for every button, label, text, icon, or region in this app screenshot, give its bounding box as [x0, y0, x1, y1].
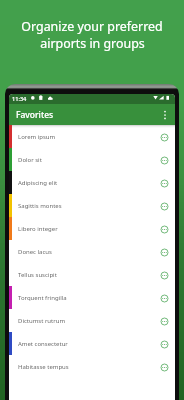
button[interactable]: Options for Habitasse tempus: [155, 358, 173, 376]
button[interactable]: Sagittis montes: [9, 194, 175, 217]
staticText: airports in groups: [40, 35, 145, 52]
button[interactable]: Amet consectetur: [9, 332, 175, 355]
staticText: Organize your preferred: [21, 18, 163, 35]
staticText: Dictumst rutrum: [18, 317, 66, 325]
staticText: Libero integer: [18, 225, 58, 233]
button[interactable]: Options for Dictumst rutrum: [155, 312, 173, 330]
button[interactable]: More options: [156, 106, 174, 124]
staticText: Tellus suscipit: [18, 271, 57, 279]
button[interactable]: Lorem ipsum: [9, 125, 175, 148]
staticText: Torquent fringilla: [18, 294, 67, 302]
staticText: Adipiscing elit: [18, 179, 58, 187]
staticText: Habitasse tempus: [18, 363, 69, 371]
button[interactable]: Adipiscing elit: [9, 171, 175, 194]
button[interactable]: Options for Dolor sit: [155, 151, 173, 169]
staticText: Lorem ipsum: [18, 133, 56, 141]
button[interactable]: Options for Libero integer: [155, 220, 173, 238]
staticText: Amet consectetur: [18, 340, 68, 348]
staticText: Favorites: [16, 109, 54, 121]
button[interactable]: Torquent fringilla: [9, 286, 175, 309]
button[interactable]: Options for Amet consectetur: [155, 335, 173, 353]
staticText: Dolor sit: [18, 156, 42, 164]
button[interactable]: Options for Adipiscing elit: [155, 174, 173, 192]
button[interactable]: Libero integer: [9, 217, 175, 240]
staticText: 11:34: [12, 95, 27, 103]
button[interactable]: Dolor sit: [9, 148, 175, 171]
button[interactable]: Donec lacus: [9, 240, 175, 263]
button[interactable]: Options for Tellus suscipit: [155, 266, 173, 284]
button[interactable]: Options for Torquent fringilla: [155, 289, 173, 307]
button[interactable]: Options for Sagittis montes: [155, 197, 173, 215]
staticText: Donec lacus: [18, 248, 52, 256]
button[interactable]: Options for Donec lacus: [155, 243, 173, 261]
button[interactable]: Habitasse tempus: [9, 355, 175, 378]
staticText: Sagittis montes: [18, 202, 62, 210]
button[interactable]: Options for Lorem ipsum: [155, 128, 173, 146]
button[interactable]: Dictumst rutrum: [9, 309, 175, 332]
button[interactable]: Tellus suscipit: [9, 263, 175, 286]
